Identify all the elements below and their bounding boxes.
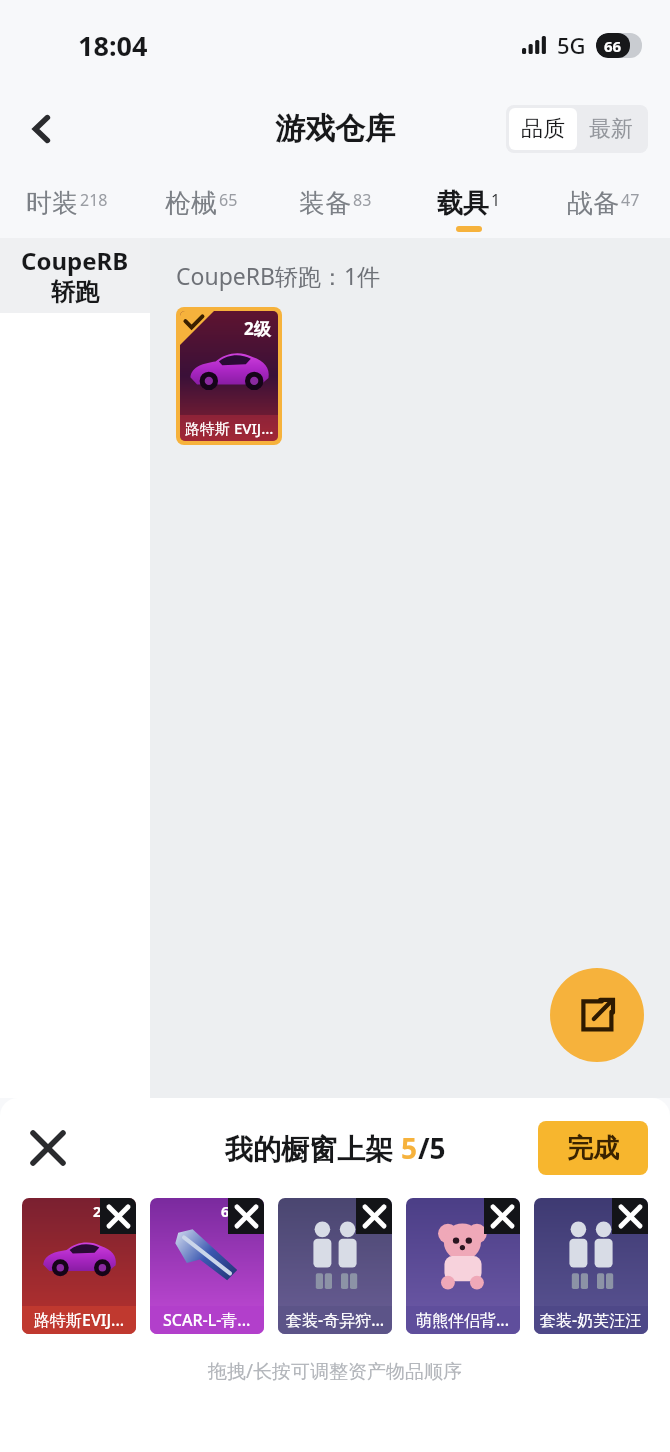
staticText: 萌熊伴侣背... <box>416 1309 510 1331</box>
staticText: 枪械 <box>165 187 217 220</box>
button[interactable]: 2 <box>22 1198 136 1334</box>
staticText: 我的橱窗上架 <box>225 1129 401 1167</box>
button[interactable]: 载具 <box>402 168 536 238</box>
staticText: 时装 <box>26 187 78 220</box>
staticText: 品质 <box>521 115 565 143</box>
staticText: 套装-奇异狩... <box>286 1309 385 1331</box>
button[interactable]: 2级 <box>176 307 282 445</box>
button[interactable]: 战备 <box>536 168 670 238</box>
button[interactable]: 最新 <box>577 108 645 150</box>
staticText: 6 <box>221 1202 230 1221</box>
button[interactable]: 6 <box>150 1198 264 1334</box>
staticText: 装备 <box>299 187 351 220</box>
staticText: 47 <box>621 189 640 211</box>
staticText: 2级 <box>244 317 271 340</box>
staticText: 2 <box>93 1202 102 1221</box>
staticText: 83 <box>353 189 372 211</box>
button[interactable]: Remove 萌熊伴侣背... <box>484 1198 520 1234</box>
staticText: CoupeRB轿跑：1件 <box>176 260 381 291</box>
button[interactable]: 枪械 <box>134 168 268 238</box>
button[interactable]: Share <box>550 968 644 1062</box>
button[interactable]: 完成 <box>538 1121 648 1175</box>
staticText: 5 <box>401 1129 418 1167</box>
button[interactable]: Remove 路特斯EVIJ... <box>100 1198 136 1234</box>
staticText: 最新 <box>589 115 633 143</box>
button[interactable]: 时装 <box>0 168 134 238</box>
button[interactable]: Remove 套装-奇异狩... <box>356 1198 392 1234</box>
staticText: 战备 <box>567 187 619 220</box>
staticText: 套装-奶芙汪汪 <box>540 1309 642 1331</box>
button[interactable]: Remove SCAR-L-青... <box>228 1198 264 1234</box>
staticText: 1 <box>491 189 501 211</box>
staticText: 18:04 <box>78 27 148 64</box>
button[interactable]: Back <box>14 101 70 157</box>
button[interactable]: Remove 套装-奶芙汪汪 <box>534 1198 648 1334</box>
staticText: 路特斯 EVIJ... <box>185 418 274 438</box>
button[interactable]: Close <box>20 1120 76 1176</box>
staticText: CoupeRB <box>21 244 129 277</box>
staticText: SCAR-L-青... <box>163 1309 251 1331</box>
staticText: /5 <box>418 1129 446 1167</box>
button[interactable]: 品质 <box>509 108 577 150</box>
staticText: 65 <box>219 189 238 211</box>
staticText: 拖拽/长按可调整资产物品顺序 <box>0 1358 670 1384</box>
staticText: 载具 <box>437 187 489 220</box>
staticText: 218 <box>80 189 108 211</box>
staticText: 完成 <box>567 1132 619 1165</box>
button[interactable]: Remove 套装-奇异狩... <box>278 1198 392 1334</box>
button[interactable]: 装备 <box>268 168 402 238</box>
staticText: 66 <box>604 36 622 56</box>
staticText: 路特斯EVIJ... <box>34 1309 125 1331</box>
staticText: 轿跑 <box>51 277 99 307</box>
button[interactable]: CoupeRB <box>0 238 150 313</box>
staticText: 游戏仓库 <box>275 110 395 148</box>
button[interactable]: Remove 萌熊伴侣背... <box>406 1198 520 1334</box>
staticText: 5G <box>557 30 586 60</box>
button[interactable]: Remove 套装-奶芙汪汪 <box>612 1198 648 1234</box>
